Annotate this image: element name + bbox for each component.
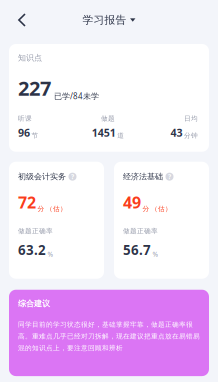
staticText: 1451 — [92, 126, 116, 140]
staticText: 做题 — [101, 114, 115, 123]
staticText: （估） — [46, 205, 67, 213]
staticText: 227 — [18, 75, 51, 101]
staticText: 学习报告 — [82, 13, 126, 26]
staticText: （估） — [151, 205, 172, 213]
staticText: 经济法基础 — [123, 172, 163, 181]
staticText: 综合建议 — [18, 299, 50, 308]
button[interactable]: 初级会计实务 — [9, 162, 104, 279]
staticText: ? — [71, 172, 74, 181]
staticText: 96 — [18, 126, 30, 140]
staticText: % — [152, 250, 158, 259]
staticText: 已学/84未学 — [54, 91, 99, 101]
staticText: 分钟 — [184, 132, 198, 140]
staticText: 做题正确率 — [18, 227, 53, 235]
staticText: 49 — [123, 192, 141, 213]
staticText: 节 — [31, 132, 38, 140]
staticText: 72 — [18, 192, 36, 213]
staticText: 日均 — [184, 114, 198, 123]
staticText: 初级会计实务 — [18, 172, 66, 181]
staticText: 同学目前的学习状态很好，基础掌握牢靠，做题正确率很高。重难点几乎已经对刀拆解，现… — [18, 320, 200, 352]
button[interactable]: Back — [9, 7, 35, 33]
staticText: 听课 — [18, 114, 32, 123]
staticText: 分 — [142, 205, 149, 213]
staticText: % — [47, 250, 53, 259]
staticText: ? — [168, 172, 171, 181]
button[interactable]: 学习报告 — [76, 8, 141, 31]
staticText: 知识点 — [18, 53, 42, 63]
staticText: 分 — [37, 205, 44, 213]
staticText: 56.7 — [123, 241, 151, 259]
button[interactable]: 经济法基础 — [114, 162, 209, 279]
staticText: 43 — [170, 126, 182, 140]
staticText: 做题正确率 — [123, 227, 158, 235]
staticText: 道 — [117, 132, 124, 140]
staticText: 63.2 — [18, 241, 46, 259]
